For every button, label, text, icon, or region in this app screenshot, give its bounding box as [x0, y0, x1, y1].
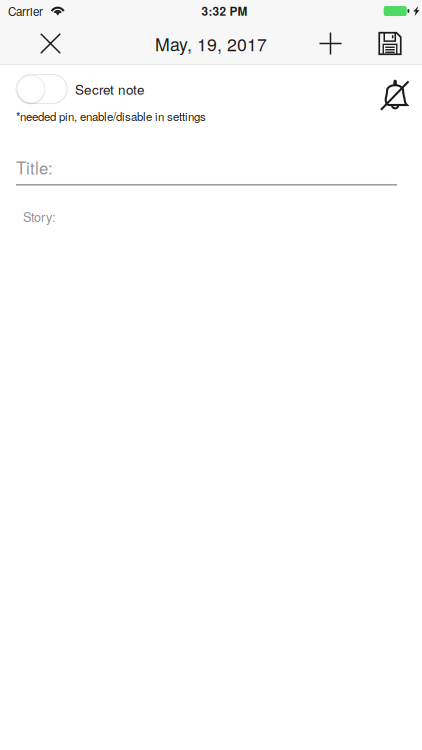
staticText: Carrier [8, 3, 43, 19]
staticText: *needed pin, enable/disable in settings [16, 108, 206, 124]
staticText: May, 19, 2017 [155, 31, 267, 56]
button[interactable]: Add [303, 22, 358, 65]
button[interactable]: Close [0, 22, 101, 65]
staticText: Secret note [75, 79, 145, 99]
staticText: Title: [16, 155, 53, 179]
button[interactable]: Save [358, 22, 422, 65]
staticText: Story: [23, 208, 56, 226]
staticText: 3:32 PM [201, 3, 247, 19]
button[interactable]: Notifications off [374, 74, 416, 116]
button[interactable]: Secret note [16, 74, 68, 104]
